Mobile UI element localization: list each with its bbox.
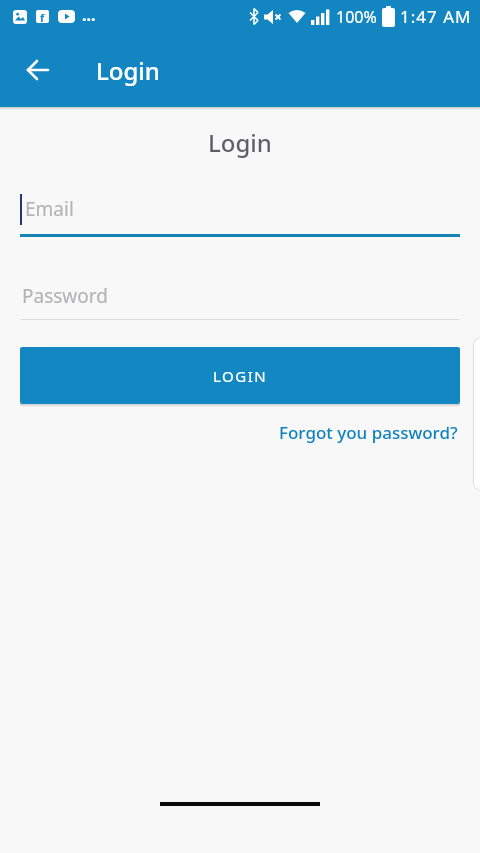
staticText: 1:47 AM xyxy=(400,5,472,28)
staticText: 100% xyxy=(336,6,377,28)
button[interactable] xyxy=(14,46,62,94)
staticText: Email xyxy=(25,196,74,222)
staticText: ... xyxy=(82,4,96,26)
button[interactable]: Email xyxy=(20,185,460,233)
staticText: f xyxy=(40,10,45,23)
staticText: Password xyxy=(22,283,108,309)
staticText: LOGIN xyxy=(213,366,268,386)
staticText: Login xyxy=(208,126,272,158)
button[interactable]: Forgot you password? xyxy=(279,421,458,444)
button[interactable]: LOGIN xyxy=(20,347,460,404)
button[interactable]: Password xyxy=(20,274,460,318)
staticText: Login xyxy=(96,54,160,87)
